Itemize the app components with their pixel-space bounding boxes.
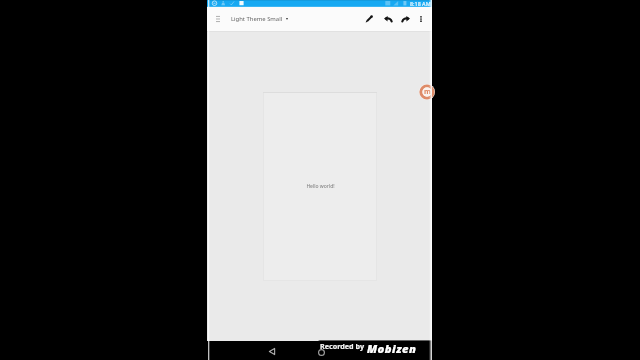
- button[interactable]: Redo: [401, 14, 411, 24]
- staticText: Recorded by: [320, 341, 365, 351]
- staticText: Hello world!: [306, 183, 335, 190]
- button[interactable]: Undo: [383, 14, 393, 24]
- button[interactable]: Document page: [263, 92, 377, 281]
- button[interactable]: More options: [416, 14, 426, 24]
- button[interactable]: Back: [265, 344, 279, 358]
- staticText: Mobizen: [367, 341, 417, 356]
- button[interactable]: Home: [314, 345, 328, 359]
- button[interactable]: Mobizen recorder: [419, 84, 435, 100]
- button[interactable]: Light Theme Small: [229, 9, 292, 29]
- staticText: Light Theme Small: [231, 15, 283, 23]
- button[interactable]: Edit: [364, 14, 374, 24]
- staticText: m: [424, 87, 431, 97]
- button[interactable]: Navigation menu: [211, 12, 225, 26]
- staticText: 8:18 AM: [410, 0, 431, 7]
